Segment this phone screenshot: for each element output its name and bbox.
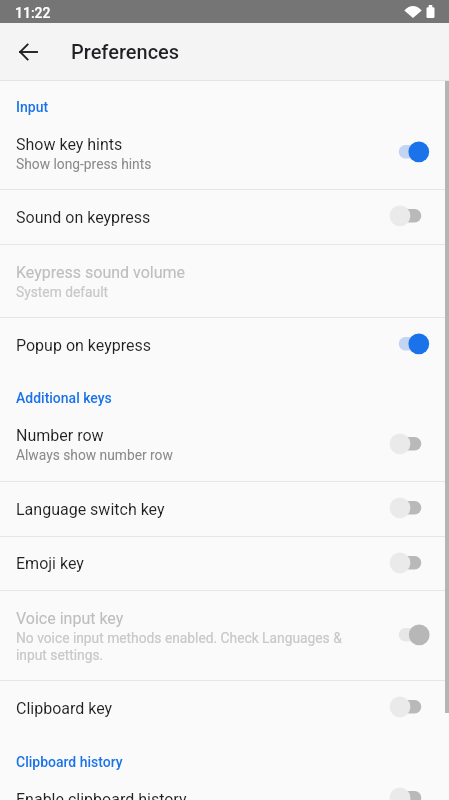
staticText: Clipboard history	[16, 754, 123, 770]
button[interactable]: Keypress sound volume	[0, 245, 449, 317]
staticText: System default	[16, 284, 109, 300]
staticText: 11:22	[15, 5, 51, 21]
staticText: Show long-press hints	[16, 156, 152, 172]
staticText: Additional keys	[16, 390, 112, 406]
staticText: No voice input methods enabled. Check La…	[16, 630, 360, 663]
button[interactable]: Toggle setting	[388, 432, 429, 458]
button[interactable]: Navigate up	[11, 35, 45, 69]
button[interactable]: Number row	[0, 408, 449, 481]
button[interactable]: Voice input key	[0, 591, 449, 680]
button[interactable]: Clipboard key	[0, 681, 449, 735]
staticText: Sound on keypress	[16, 208, 151, 227]
staticText: Clipboard key	[16, 699, 113, 718]
staticText: Number row	[16, 426, 104, 445]
button[interactable]: Toggle setting	[388, 204, 429, 230]
button[interactable]: Emoji key	[0, 537, 449, 590]
button[interactable]: Toggle setting	[388, 623, 429, 649]
button[interactable]: Toggle setting	[388, 551, 429, 577]
button[interactable]: Toggle setting	[388, 786, 429, 800]
button[interactable]: Toggle setting	[388, 695, 429, 721]
button[interactable]: Toggle setting	[388, 332, 429, 358]
other: Battery	[426, 5, 435, 18]
staticText: Show key hints	[16, 135, 123, 154]
staticText: Language switch key	[16, 500, 165, 519]
staticText: Emoji key	[16, 554, 84, 573]
staticText: Input	[16, 99, 49, 115]
other: Wi-Fi	[404, 6, 422, 18]
button[interactable]: Enable clipboard history	[0, 772, 449, 800]
button[interactable]: Toggle setting	[388, 140, 429, 166]
staticText: Preferences	[71, 40, 180, 63]
button[interactable]: Toggle setting	[388, 496, 429, 522]
staticText: Enable clipboard history	[16, 790, 187, 800]
staticText: Popup on keypress	[16, 336, 151, 355]
button[interactable]: Show key hints	[0, 117, 449, 189]
button[interactable]: Language switch key	[0, 482, 449, 536]
staticText: Voice input key	[16, 609, 124, 628]
staticText: Keypress sound volume	[16, 263, 186, 282]
staticText: Always show number row	[16, 447, 173, 463]
button[interactable]: Popup on keypress	[0, 318, 449, 372]
button[interactable]: Sound on keypress	[0, 190, 449, 244]
